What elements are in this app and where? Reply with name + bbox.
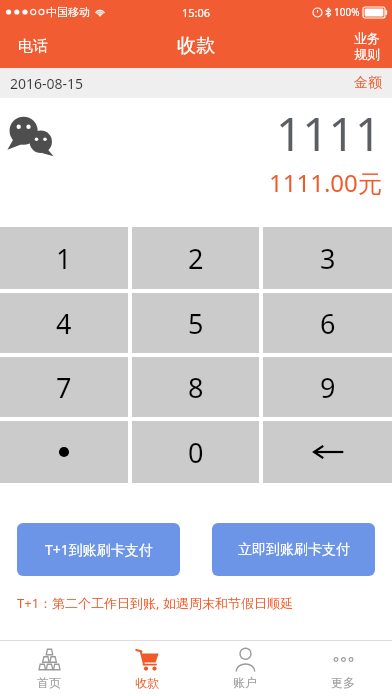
staticText: T+1：第二个工作日到账, 如遇周末和节假日顺延 [17,594,293,612]
button[interactable]: 收款 [98,641,196,696]
button[interactable]: 8 [132,357,259,417]
staticText: 7 [56,369,72,406]
staticText: 15:06 [182,5,211,20]
button[interactable]: 3 [263,227,392,289]
staticText: T+1到账刷卡支付 [45,540,153,559]
button[interactable]: 电话 [0,29,66,64]
staticText: 9 [320,369,336,406]
staticText: 中国移动 [46,5,90,19]
button[interactable]: T+1到账刷卡支付 [17,523,180,576]
staticText: 8 [188,369,204,406]
staticText: 4 [56,305,72,342]
staticText: 1111.00元 [269,166,382,199]
button[interactable]: 2 [132,227,259,289]
staticText: 2 [188,240,204,277]
button[interactable]: 更多 [294,641,392,696]
button[interactable]: 立即到账刷卡支付 [212,523,375,576]
staticText: 金额 [354,74,382,92]
button[interactable]: 4 [0,293,128,353]
button[interactable]: 5 [132,293,259,353]
staticText: 规则 [354,46,380,62]
staticText: 账户 [233,675,257,690]
staticText: 1 [56,240,72,277]
button[interactable]: 1 [0,227,128,289]
staticText: 6 [320,305,336,342]
staticText: 3 [320,240,336,277]
staticText: 电话 [18,37,48,56]
staticText: 100% [334,5,360,19]
staticText: 5 [188,305,204,342]
other: WeChat [8,114,60,158]
button[interactable]: Decimal point [0,421,128,483]
button[interactable]: 业务 [342,30,392,62]
staticText: 更多 [331,675,355,690]
button[interactable]: 9 [263,357,392,417]
staticText: 1111 [276,102,382,165]
staticText: 0 [188,434,204,471]
staticText: 业务 [354,30,380,46]
staticText: 收款 [135,675,159,690]
staticText: 立即到账刷卡支付 [238,541,350,559]
staticText: 首页 [37,675,61,690]
button[interactable]: 首页 [0,641,98,696]
button[interactable]: 账户 [196,641,294,696]
staticText: 2016-08-15 [10,74,84,93]
staticText: 收款 [177,34,215,58]
button[interactable]: 6 [263,293,392,353]
button[interactable]: 7 [0,357,128,417]
button[interactable]: Backspace [263,421,392,483]
button[interactable]: 0 [132,421,259,483]
